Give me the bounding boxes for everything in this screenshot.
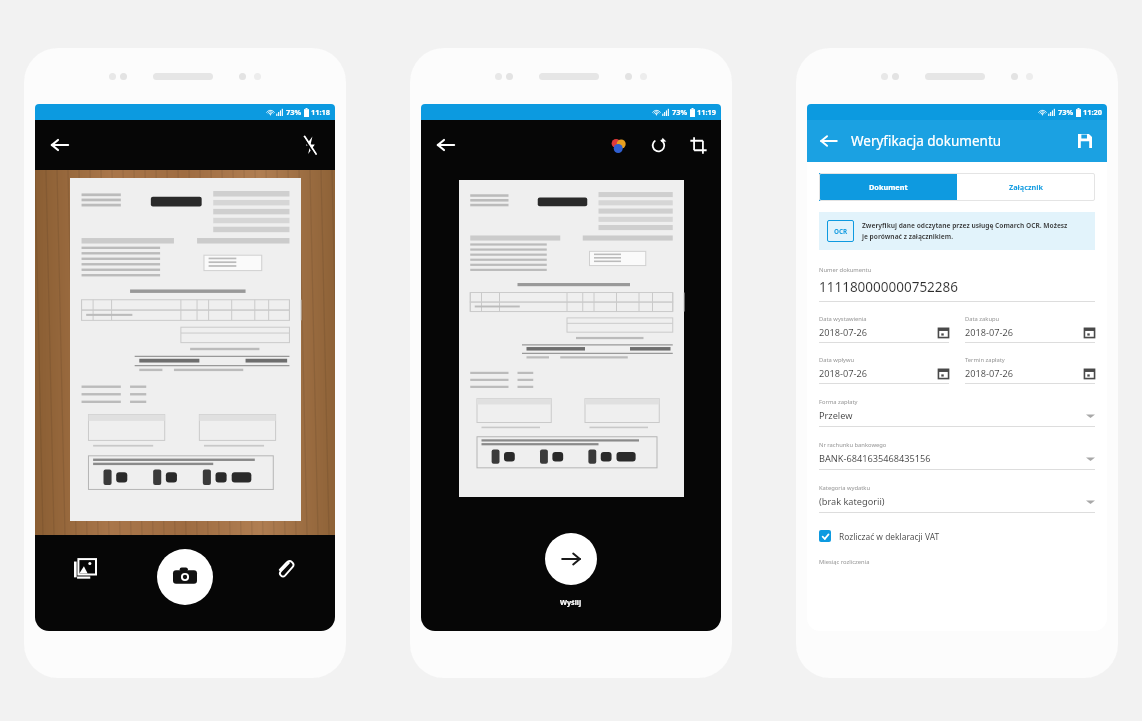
button[interactable]: Data wystawienia [819,315,949,343]
button[interactable]: Wyślij [545,533,597,585]
staticText: Data wystawienia [819,315,867,323]
staticText: 11:19 [697,107,716,117]
staticText: je porównać z załącznikiem. [862,232,954,241]
button[interactable]: Wstecz [431,130,461,160]
staticText: Przelew [819,409,1086,422]
button[interactable]: Zapisz [1072,128,1098,154]
button[interactable]: Załącznik [265,549,305,589]
button[interactable]: Lampa błyskowa [295,130,325,160]
staticText: Forma zapłaty [819,398,858,406]
staticText: 73% [286,107,302,117]
staticText: Data wpływu [819,356,855,364]
staticText: Nr rachunku bankowego [819,441,887,449]
staticText: Numer dokumentu [819,266,872,274]
button[interactable]: Kadruj [683,130,713,160]
button[interactable]: Zrób zdjęcie [157,549,213,605]
staticText: 11:20 [1083,107,1102,117]
button[interactable]: Dokument [819,173,957,201]
button[interactable]: Obróć [643,130,673,160]
staticText: Miesiąc rozliczenia [819,558,870,566]
staticText: OCR [834,227,848,236]
button[interactable]: Wstecz [45,130,75,160]
button[interactable]: Forma zapłaty [819,398,1095,427]
staticText: 2018-07-26 [965,367,1084,380]
staticText: 73% [672,107,688,117]
button[interactable]: Data wpływu [819,356,949,384]
staticText: 2018-07-26 [965,326,1084,339]
staticText: Wyślij [560,597,582,607]
button[interactable]: Filtry koloru [603,130,633,160]
staticText: Rozliczać w deklaracji VAT [839,531,940,542]
button[interactable]: Data zakupu [965,315,1095,343]
staticText: 73% [1058,107,1074,117]
staticText: 2018-07-26 [819,326,938,339]
button[interactable]: Nr rachunku bankowego [819,441,1095,470]
staticText: BANK-6841635468435156 [819,452,1086,465]
button[interactable]: Załącznik [957,173,1095,201]
staticText: Zweryfikuj dane odczytane przez usługę C… [862,221,1068,230]
staticText: Kategoria wydatku [819,484,871,492]
staticText: 11:18 [311,107,330,117]
staticText: Termin zapłaty [965,356,1005,364]
staticText: Weryfikacja dokumentu [851,132,1002,150]
button[interactable]: Rozliczać w deklaracji VAT [819,530,1095,542]
staticText: 2018-07-26 [819,367,938,380]
staticText: Dokument [869,182,908,192]
staticText: (brak kategorii) [819,495,1086,508]
button[interactable]: Galeria [65,549,105,589]
button[interactable]: Kategoria wydatku [819,484,1095,513]
staticText: Załącznik [1009,182,1044,192]
staticText: Data zakupu [965,315,1000,323]
button[interactable]: Wstecz [816,128,842,154]
staticText: 111180000000752286 [819,278,958,296]
button[interactable]: Termin zapłaty [965,356,1095,384]
